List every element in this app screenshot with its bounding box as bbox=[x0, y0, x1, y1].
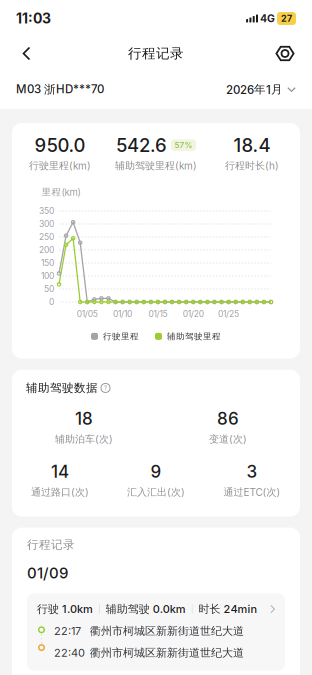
staticText: M03 浙HD***70 bbox=[16, 82, 104, 97]
staticText: 11:03 bbox=[16, 10, 51, 27]
button[interactable]: Settings bbox=[268, 36, 302, 70]
staticText: 4G bbox=[258, 12, 277, 25]
staticText: 行程记录 bbox=[27, 537, 75, 552]
staticText: 57% bbox=[174, 140, 192, 150]
staticText: 150 bbox=[41, 258, 54, 268]
staticText: 行驶 bbox=[37, 602, 62, 616]
staticText: 01/05 bbox=[77, 309, 98, 319]
staticText: 542.6 bbox=[116, 134, 167, 156]
staticText: 汇入汇出(次) bbox=[127, 486, 185, 498]
staticText: 18 bbox=[75, 408, 93, 429]
staticText: 辅助泊车(次) bbox=[55, 433, 113, 445]
staticText: 里程(km) bbox=[41, 186, 80, 198]
staticText: 01/09 bbox=[27, 564, 68, 582]
button[interactable]: 2026年1月 bbox=[226, 82, 296, 97]
staticText: 250 bbox=[39, 232, 54, 242]
staticText: 22:40 bbox=[54, 646, 85, 659]
staticText: 通过ETC(次) bbox=[223, 486, 280, 498]
staticText: 时长 bbox=[199, 602, 224, 616]
staticText: 通过路口(次) bbox=[31, 486, 89, 498]
staticText: 300 bbox=[39, 219, 54, 229]
staticText: 0.0km bbox=[153, 602, 186, 616]
staticText: 2026年1月 bbox=[226, 82, 283, 97]
staticText: 衢州市柯城区新新街道世纪大道 bbox=[90, 646, 244, 660]
staticText: 24min bbox=[224, 602, 258, 616]
staticText: 350 bbox=[39, 206, 54, 216]
staticText: 01/10 bbox=[113, 309, 132, 319]
staticText: 行程记录 bbox=[128, 45, 184, 62]
staticText: 行程时长(h) bbox=[225, 159, 279, 172]
button[interactable]: 行驶 bbox=[27, 593, 285, 671]
staticText: 100 bbox=[41, 271, 54, 281]
staticText: 01/20 bbox=[183, 309, 204, 319]
button[interactable]: Back bbox=[10, 36, 44, 70]
staticText: 01/25 bbox=[218, 309, 239, 319]
staticText: 950.0 bbox=[34, 134, 85, 156]
staticText: 行驶里程 bbox=[103, 331, 139, 342]
staticText: 衢州市柯城区新新街道世纪大道 bbox=[90, 624, 244, 638]
staticText: 辅助驾驶 bbox=[106, 602, 153, 616]
staticText: 50 bbox=[44, 284, 54, 294]
staticText: 辅助驾驶里程 bbox=[167, 331, 221, 342]
staticText: 辅助驾驶数据 bbox=[26, 381, 98, 395]
staticText: 18.4 bbox=[233, 134, 270, 156]
staticText: 200 bbox=[39, 245, 54, 255]
staticText: 27 bbox=[281, 13, 292, 24]
staticText: 1.0km bbox=[62, 602, 93, 616]
staticText: 9 bbox=[150, 461, 161, 482]
staticText: 变道(次) bbox=[209, 433, 247, 445]
staticText: 86 bbox=[217, 408, 239, 429]
staticText: 3 bbox=[246, 461, 257, 482]
staticText: 行驶里程(km) bbox=[29, 159, 91, 172]
staticText: 22:17 bbox=[54, 624, 81, 638]
staticText: 01/15 bbox=[148, 309, 167, 319]
staticText: 辅助驾驶里程(km) bbox=[115, 159, 197, 172]
staticText: 14 bbox=[51, 461, 69, 482]
staticText: 0 bbox=[49, 297, 54, 307]
staticText: ? bbox=[104, 384, 107, 392]
